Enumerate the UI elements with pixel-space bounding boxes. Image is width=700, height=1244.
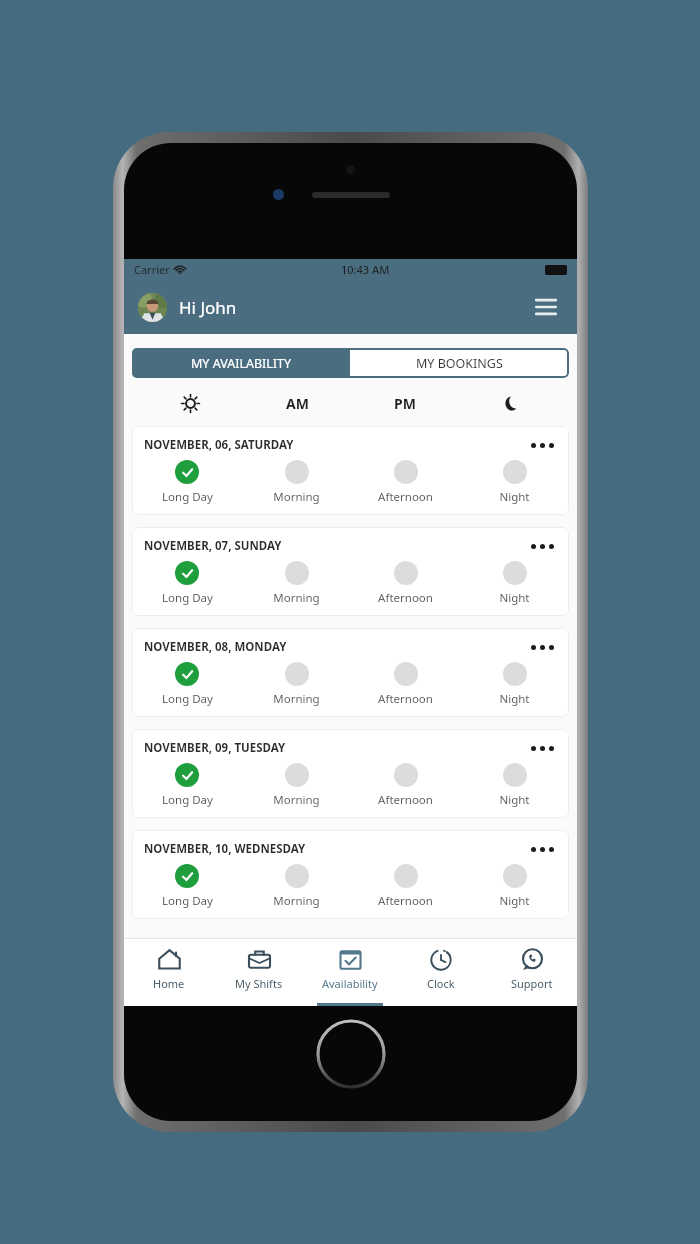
button[interactable]: Support [486,938,577,1006]
button[interactable]: More options [527,436,557,454]
staticText: Support [511,976,553,991]
staticText: Long Day [162,489,213,505]
button[interactable]: MY AVAILABILITY [132,348,350,378]
button[interactable]: Morning [242,763,351,808]
button[interactable]: Afternoon [351,763,460,808]
staticText: Carrier [134,262,170,277]
button[interactable]: Afternoon [351,662,460,707]
staticText: AM [286,394,309,413]
button[interactable]: More options [527,739,557,757]
button[interactable]: NOVEMBER, 06, SATURDAY [132,426,569,515]
staticText: My Shifts [235,976,283,991]
staticText: NOVEMBER, 09, TUESDAY [144,740,286,756]
button[interactable]: More options [527,537,557,555]
button[interactable]: Night [460,763,569,808]
staticText: Afternoon [378,590,433,606]
button[interactable]: Profile [138,293,167,322]
staticText: MY BOOKINGS [416,355,503,372]
button[interactable]: Morning [242,864,351,909]
staticText: Afternoon [378,792,433,808]
staticText: NOVEMBER, 06, SATURDAY [144,437,294,453]
button[interactable]: Availability [304,938,395,1006]
staticText: Afternoon [378,691,433,707]
staticText: Morning [273,691,320,707]
button[interactable]: Afternoon [351,561,460,606]
button[interactable]: Night [460,662,569,707]
staticText: Long Day [162,590,213,606]
button[interactable]: Morning [242,662,351,707]
staticText: Night [499,792,530,808]
button[interactable]: Clock [395,938,486,1006]
staticText: NOVEMBER, 07, SUNDAY [144,538,282,554]
button[interactable]: Long Day [132,864,242,909]
staticText: Long Day [162,792,213,808]
button[interactable]: Home [124,938,214,1006]
staticText: PM [394,394,416,413]
button[interactable]: Afternoon [351,864,460,909]
button[interactable]: Menu [529,290,563,324]
staticText: Afternoon [378,489,433,505]
button[interactable]: More options [527,638,557,656]
button[interactable]: Night [460,864,569,909]
button[interactable]: My Shifts [214,938,304,1006]
button[interactable]: More options [527,840,557,858]
staticText: 10:43 AM [341,262,390,277]
button[interactable]: Long Day [132,662,242,707]
staticText: Hi John [179,296,237,319]
button[interactable]: Long Day [132,460,242,505]
staticText: Morning [273,893,320,909]
staticText: Night [499,489,530,505]
staticText: Night [499,893,530,909]
button[interactable]: Afternoon [351,460,460,505]
button[interactable]: Morning [242,561,351,606]
button[interactable]: NOVEMBER, 07, SUNDAY [132,527,569,616]
staticText: Morning [273,489,320,505]
button[interactable]: Morning [242,460,351,505]
button[interactable]: NOVEMBER, 09, TUESDAY [132,729,569,818]
button[interactable]: Night [460,561,569,606]
staticText: MY AVAILABILITY [191,355,292,372]
button[interactable]: Long Day [132,763,242,808]
staticText: NOVEMBER, 08, MONDAY [144,639,287,655]
staticText: Long Day [162,691,213,707]
button[interactable]: Long Day [132,561,242,606]
button[interactable]: NOVEMBER, 10, WEDNESDAY [132,830,569,919]
staticText: Clock [427,976,455,991]
button[interactable]: NOVEMBER, 08, MONDAY [132,628,569,717]
staticText: NOVEMBER, 10, WEDNESDAY [144,841,306,857]
staticText: Morning [273,792,320,808]
button[interactable]: MY BOOKINGS [350,348,569,378]
staticText: Night [499,691,530,707]
staticText: Home [153,976,185,991]
staticText: Afternoon [378,893,433,909]
button[interactable]: Night [460,460,569,505]
staticText: Long Day [162,893,213,909]
staticText: Availability [322,976,378,991]
staticText: Morning [273,590,320,606]
staticText: Night [499,590,530,606]
